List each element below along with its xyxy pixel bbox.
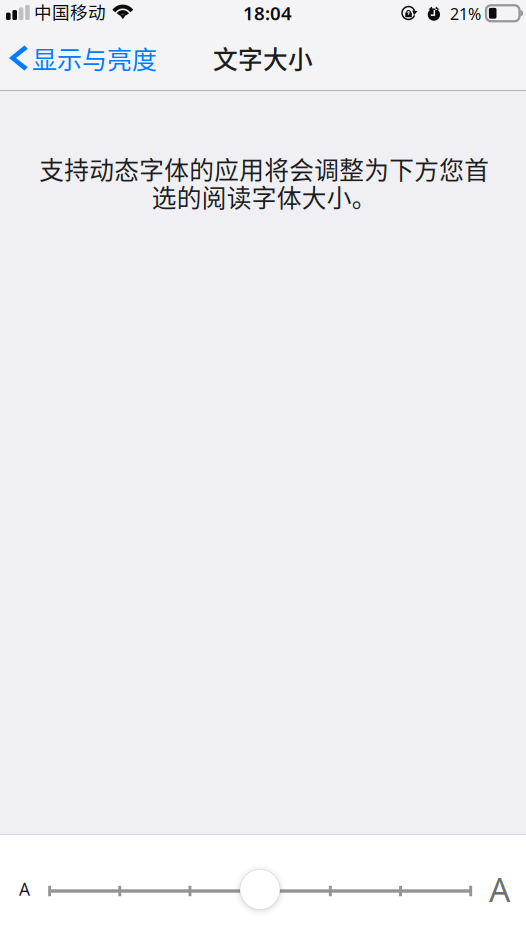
staticText: A (19, 877, 30, 900)
button[interactable]: Text size (0, 835, 526, 895)
staticText: 21% (450, 3, 481, 24)
staticText: 中国移动 (34, 0, 106, 24)
staticText: 支持动态字体的应用将会调整为下方您首 选的阅读字体大小。 (39, 151, 489, 214)
staticText: 18:04 (243, 0, 292, 25)
staticText: 文字大小 (213, 40, 313, 76)
staticText: A (489, 867, 510, 911)
staticText: 显示与亮度 (32, 40, 157, 76)
button[interactable]: 显示与亮度 (0, 35, 167, 81)
